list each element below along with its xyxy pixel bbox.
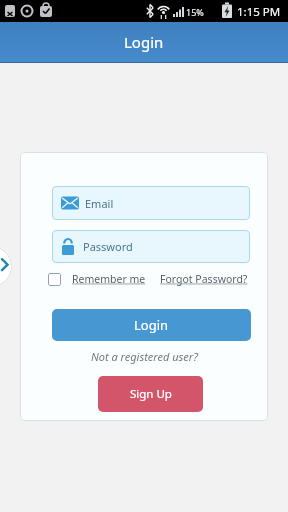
button[interactable]: Login — [52, 309, 251, 341]
staticText: Login — [134, 316, 169, 334]
staticText: Password — [83, 239, 133, 254]
button[interactable]: Forgot Password? — [160, 272, 248, 286]
button[interactable]: Password — [52, 230, 250, 263]
button[interactable]: Sign Up — [98, 376, 203, 412]
staticText: Remember me — [72, 272, 146, 286]
staticText: Login — [124, 32, 164, 52]
staticText: Email — [85, 196, 114, 211]
staticText: 15% — [186, 6, 204, 18]
staticText: 1:15 PM — [237, 4, 281, 20]
staticText: Sign Up — [130, 386, 172, 402]
staticText: Not a registered user? — [91, 349, 198, 364]
button[interactable]: Email — [52, 186, 250, 220]
button[interactable] — [0, 246, 12, 287]
button[interactable]: Remember me — [48, 272, 146, 286]
